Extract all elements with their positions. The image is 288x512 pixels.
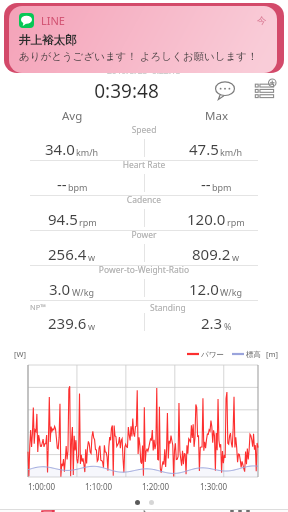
staticText: 2019/5/25 6:22:13	[107, 65, 181, 77]
staticText: Speed	[0, 124, 288, 136]
button[interactable]: Power	[0, 231, 288, 266]
staticText: 47.5	[189, 139, 219, 159]
staticText: 標高	[246, 350, 261, 359]
staticText: 34.0	[45, 139, 75, 159]
staticText: --	[201, 174, 211, 194]
staticText: 1:20:00	[142, 481, 170, 492]
staticText: Power	[0, 229, 288, 241]
staticText: %	[224, 320, 232, 332]
staticText: W/kg	[220, 286, 243, 298]
staticText: --	[57, 174, 67, 194]
staticText: パワー	[201, 350, 224, 359]
staticText: LINE	[41, 13, 65, 28]
staticText: km/h	[76, 146, 99, 158]
staticText: 0:39:48	[94, 78, 159, 102]
staticText: w	[88, 320, 96, 332]
staticText: bpm	[68, 181, 88, 193]
staticText: 1:30:00	[200, 481, 228, 492]
staticText: Heart Rate	[0, 159, 288, 171]
button[interactable]: Speed	[0, 126, 288, 161]
staticText: 239.6	[48, 313, 87, 333]
staticText: Avg	[62, 108, 83, 124]
button[interactable]: Add to list	[252, 78, 278, 102]
staticText: 1:10:00	[85, 481, 113, 492]
button[interactable]: Power-to-Weight-Ratio	[0, 266, 288, 301]
button[interactable]: Heart Rate	[0, 161, 288, 196]
staticText: rpm	[79, 216, 97, 228]
staticText: 256.4	[48, 244, 87, 264]
button[interactable]: Cadence	[0, 196, 288, 231]
staticText: bpm	[212, 181, 232, 193]
button[interactable]: Comments	[212, 78, 238, 102]
staticText: 今	[257, 15, 267, 27]
staticText: 120.0	[187, 209, 226, 229]
staticText: W/kg	[72, 286, 95, 298]
button[interactable]: もっと	[192, 510, 288, 512]
staticText: km/h	[220, 146, 243, 158]
staticText: 809.2	[192, 244, 231, 264]
staticText: 3.0	[49, 279, 71, 299]
staticText: [m]	[266, 349, 278, 359]
staticText: rpm	[227, 216, 245, 228]
staticText: Max	[205, 108, 228, 124]
button[interactable]: セグメント	[96, 510, 192, 512]
button[interactable]: ワークアウトリスト	[0, 510, 96, 512]
staticText: 1:00:00	[28, 481, 56, 492]
staticText: w	[232, 251, 240, 263]
staticText: Cadence	[0, 194, 288, 206]
staticText: 2.3	[201, 313, 223, 333]
staticText: 94.5	[48, 209, 78, 229]
staticText: w	[88, 251, 96, 263]
staticText: 12.0	[189, 279, 219, 299]
staticText: Power-to-Weight-Ratio	[0, 264, 288, 276]
button[interactable]: LINE	[9, 6, 277, 73]
staticText: 井上裕太郎	[19, 33, 77, 47]
button[interactable]: NP™	[0, 301, 288, 335]
staticText: Standing	[150, 302, 186, 314]
staticText: [W]	[14, 349, 26, 359]
staticText: NP™	[30, 302, 47, 312]
staticText: ありがとうございます！ よろしくお願いします！	[19, 49, 258, 63]
